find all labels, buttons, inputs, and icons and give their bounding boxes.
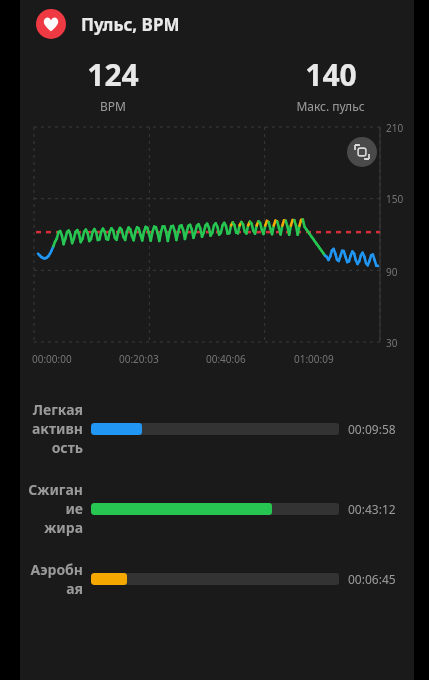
staticText: Легкая активность [28, 400, 83, 457]
button[interactable]: Expand chart [347, 137, 377, 167]
staticText: 00:06:45 [348, 571, 396, 587]
staticText: 30 [386, 336, 398, 350]
staticText: 210 [386, 121, 404, 135]
staticText: 90 [386, 265, 398, 279]
staticText: Макс. пульс [296, 98, 365, 114]
button[interactable]: Пульс, BPM [20, 0, 414, 48]
staticText: 00:00:00 [32, 352, 72, 366]
staticText: Сжигание жира [28, 480, 83, 537]
button[interactable]: Легкая активность [20, 400, 414, 457]
staticText: BPM [100, 98, 126, 114]
staticText: 124 [87, 54, 139, 95]
staticText: 00:09:58 [348, 421, 396, 437]
staticText: 00:43:12 [348, 501, 396, 517]
button[interactable]: Аэробная [20, 560, 414, 598]
button[interactable]: Сжигание жира [20, 480, 414, 537]
staticText: 140 [305, 54, 357, 95]
staticText: 01:00:09 [294, 352, 334, 366]
staticText: Пульс, BPM [81, 13, 180, 36]
staticText: Аэробная [28, 560, 83, 598]
staticText: 150 [386, 192, 404, 206]
staticText: 00:20:03 [119, 352, 159, 366]
staticText: 00:40:06 [206, 352, 246, 366]
